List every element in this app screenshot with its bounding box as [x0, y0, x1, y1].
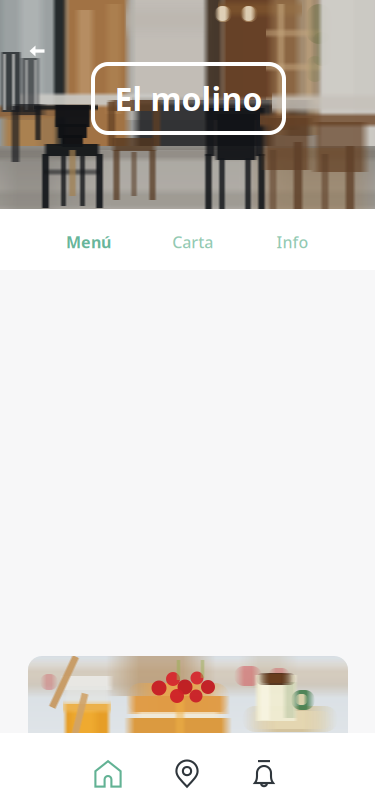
button[interactable]: Notifications: [234, 744, 294, 804]
button[interactable]: Carta: [145, 220, 241, 264]
staticText: Info: [276, 231, 308, 253]
staticText: Menú: [66, 231, 111, 253]
button[interactable]: Home: [78, 744, 138, 804]
staticText: Carta: [172, 231, 213, 253]
button[interactable]: Places: [157, 744, 217, 804]
staticText: El molino: [114, 77, 262, 120]
button[interactable]: Menú: [40, 220, 136, 264]
button[interactable]: Back: [15, 29, 59, 73]
button[interactable]: Info: [244, 220, 340, 264]
